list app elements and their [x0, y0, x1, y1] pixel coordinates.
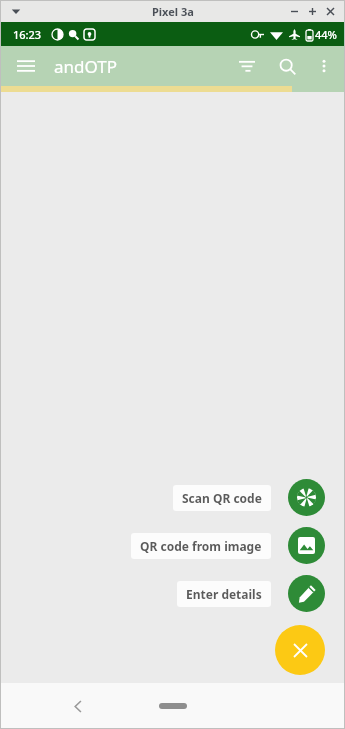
button[interactable]: Window menu: [8, 3, 24, 19]
button[interactable]: Scan QR code: [173, 479, 325, 516]
staticText: Scan QR code: [182, 490, 262, 506]
button[interactable]: Maximize: [303, 2, 321, 20]
button[interactable]: Back: [60, 688, 96, 724]
staticText: 16:23: [13, 27, 42, 42]
button[interactable]: QR code from image: [131, 527, 325, 564]
staticText: Pixel 3a: [152, 4, 194, 19]
button[interactable]: Enter details: [177, 575, 325, 612]
staticText: QR code from image: [140, 538, 262, 554]
staticText: andOTP: [54, 55, 118, 78]
button[interactable]: Open navigation drawer: [8, 48, 44, 84]
button[interactable]: Minimize: [285, 2, 303, 20]
button[interactable]: Search: [269, 48, 305, 84]
staticText: 44%: [315, 27, 337, 42]
button[interactable]: Sort: [229, 48, 265, 84]
button[interactable]: More options: [307, 49, 341, 83]
button[interactable]: Close menu: [275, 625, 325, 675]
button[interactable]: Close: [321, 2, 339, 20]
button[interactable]: Home: [143, 691, 203, 721]
staticText: Enter details: [186, 586, 262, 602]
